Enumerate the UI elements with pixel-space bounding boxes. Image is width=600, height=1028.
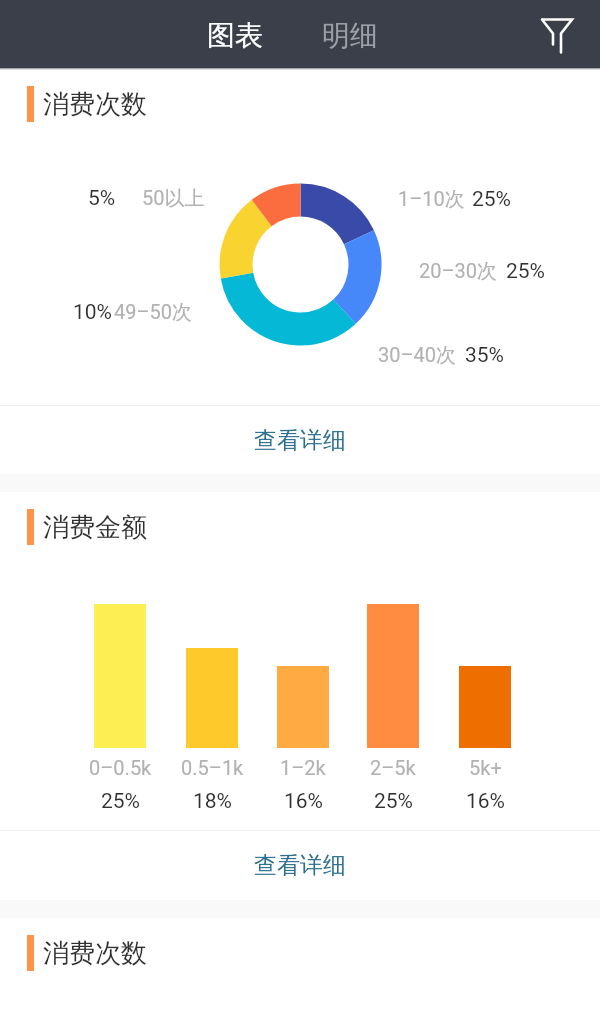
staticText: 5k+ [469, 756, 502, 779]
staticText: 1–2k [280, 756, 326, 779]
staticText: 图表 [207, 18, 263, 53]
staticText: 0–0.5k [89, 756, 152, 779]
staticText: 1–10次 [398, 187, 465, 212]
button[interactable]: 查看详细 [0, 831, 600, 899]
staticText: 消费次数 [43, 937, 147, 970]
staticText: 20–30次 [419, 259, 498, 284]
button[interactable]: Filter [523, 2, 591, 70]
staticText: 49–50次 [114, 300, 193, 325]
staticText: 0.5–1k [181, 756, 244, 779]
staticText: 50以上 [142, 186, 205, 211]
staticText: 18% [193, 789, 232, 814]
button[interactable]: 明细 [310, 8, 390, 63]
staticText: 25% [472, 187, 511, 212]
staticText: 10% [73, 300, 112, 325]
staticText: 查看详细 [254, 426, 346, 455]
staticText: 明细 [322, 18, 378, 53]
staticText: 查看详细 [254, 851, 346, 880]
other: 消费金额柱状图 [0, 0, 600, 1028]
staticText: 2–5k [370, 756, 416, 779]
staticText: 5% [88, 186, 116, 211]
staticText: 30–40次 [378, 343, 457, 368]
staticText: 消费次数 [43, 88, 147, 121]
staticText: 25% [374, 789, 413, 814]
staticText: 16% [466, 789, 505, 814]
staticText: 25% [506, 259, 545, 284]
button[interactable]: 图表 [195, 8, 275, 63]
staticText: 25% [101, 789, 140, 814]
staticText: 35% [465, 343, 504, 368]
staticText: 16% [284, 789, 323, 814]
button[interactable]: 查看详细 [0, 406, 600, 474]
staticText: 消费金额 [43, 511, 147, 544]
other: 消费次数占比环形图 [0, 0, 600, 1028]
